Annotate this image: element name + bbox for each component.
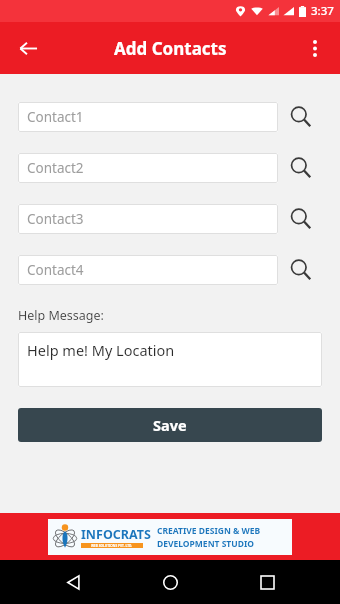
button[interactable]: Search contact (282, 200, 320, 238)
button[interactable]: Search contact (282, 251, 320, 289)
button[interactable]: Recent apps (243, 560, 291, 604)
staticText: Contact4 (27, 261, 84, 279)
button[interactable]: Search contact (282, 98, 320, 136)
staticText: DEVELOPMENT STUDIO (157, 538, 254, 550)
button[interactable]: Advertisement (0, 513, 340, 560)
button[interactable]: Save (18, 408, 322, 442)
staticText: WEB SOLUTIONS PVT. LTD. (91, 544, 133, 548)
staticText: Contact1 (27, 108, 84, 126)
button[interactable]: Contact2 (18, 153, 278, 183)
button[interactable]: Home (146, 560, 194, 604)
staticText: INFOCRATS (81, 526, 151, 543)
button[interactable]: Back (8, 28, 48, 68)
staticText: 3:37 (311, 3, 334, 19)
staticText: Help Message: (18, 307, 104, 324)
button[interactable]: More options (296, 29, 334, 67)
button[interactable]: Contact3 (18, 204, 278, 234)
button[interactable]: Contact4 (18, 255, 278, 285)
button[interactable]: Search contact (282, 149, 320, 187)
staticText: CREATIVE DESIGN & WEB (157, 525, 261, 537)
button[interactable]: Back (49, 560, 97, 604)
staticText: Add Contacts (114, 37, 227, 60)
staticText: Help me! My Location (27, 340, 175, 360)
button[interactable]: Contact1 (18, 102, 278, 132)
staticText: Contact3 (27, 210, 84, 228)
staticText: Contact2 (27, 159, 84, 177)
button[interactable]: Help me! My Location (18, 332, 322, 387)
staticText: Save (153, 415, 187, 435)
